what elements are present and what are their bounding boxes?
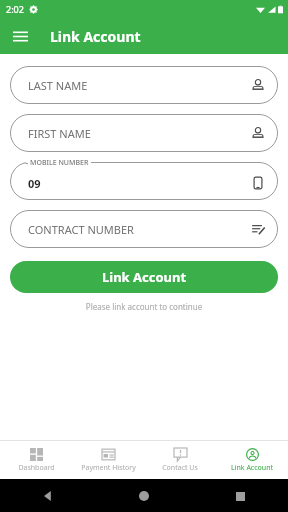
- button[interactable]: Home: [133, 485, 155, 507]
- button[interactable]: Dashboard: [0, 445, 72, 476]
- button[interactable]: FIRST NAME: [10, 114, 278, 152]
- button[interactable]: Contact Us: [144, 445, 216, 476]
- staticText: Link Account: [102, 268, 187, 286]
- staticText: LAST NAME: [28, 78, 88, 93]
- button[interactable]: LAST NAME: [10, 66, 278, 104]
- button[interactable]: Open navigation menu: [8, 24, 32, 48]
- staticText: Payment History: [81, 463, 136, 473]
- button[interactable]: Back: [37, 485, 59, 507]
- staticText: 09: [28, 176, 41, 191]
- button[interactable]: Link Account: [216, 445, 288, 476]
- button[interactable]: Payment History: [72, 445, 144, 476]
- button[interactable]: CONTRACT NUMBER: [10, 210, 278, 248]
- staticText: Please link account to continue: [0, 301, 288, 312]
- staticText: Link Account: [231, 463, 273, 473]
- staticText: Dashboard: [18, 463, 55, 473]
- staticText: FIRST NAME: [28, 126, 91, 141]
- button[interactable]: Link Account: [10, 261, 278, 293]
- button[interactable]: MOBILE NUMBER: [10, 162, 278, 200]
- staticText: Link Account: [50, 27, 141, 46]
- button[interactable]: Recent apps: [229, 485, 251, 507]
- staticText: Contact Us: [162, 463, 198, 473]
- staticText: MOBILE NUMBER: [30, 158, 89, 168]
- staticText: CONTRACT NUMBER: [28, 222, 134, 237]
- staticText: 2:02: [6, 3, 24, 15]
